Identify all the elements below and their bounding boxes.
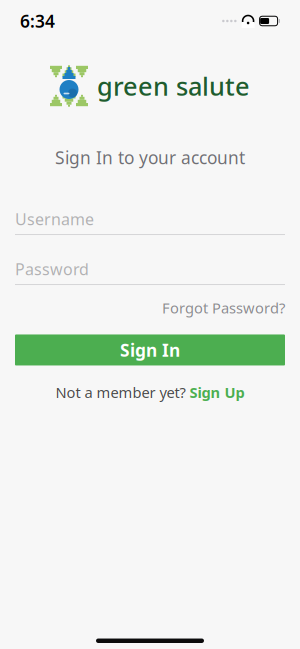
staticText: Password bbox=[15, 258, 89, 280]
button[interactable]: Sign In bbox=[15, 334, 285, 365]
button[interactable]: Forgot Password? bbox=[162, 293, 285, 322]
staticText: Username bbox=[15, 208, 94, 230]
staticText: Sign In bbox=[120, 338, 180, 361]
button[interactable]: Sign Up bbox=[189, 382, 244, 402]
button[interactable]: Username bbox=[0, 209, 300, 235]
staticText: green salute bbox=[97, 69, 250, 103]
staticText: Not a member yet? bbox=[55, 382, 185, 402]
staticText: 6:34 bbox=[20, 9, 55, 32]
staticText: Sign Up bbox=[189, 382, 244, 402]
button[interactable]: Password bbox=[0, 259, 300, 285]
staticText: Forgot Password? bbox=[162, 298, 285, 317]
staticText: Sign In to your account bbox=[55, 146, 245, 169]
